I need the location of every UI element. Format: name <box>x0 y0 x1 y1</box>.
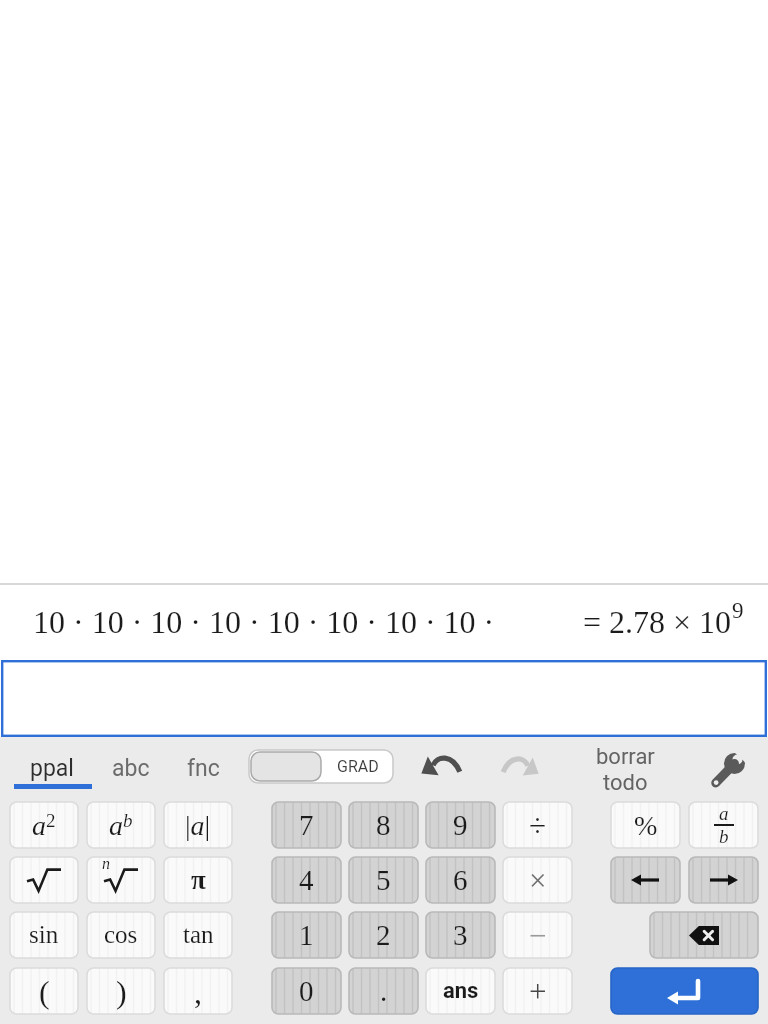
staticText: ) <box>116 974 127 1009</box>
button[interactable] <box>10 857 78 903</box>
staticText: 1 <box>299 919 314 951</box>
staticText: π <box>191 865 206 895</box>
staticText: tan <box>183 921 214 949</box>
staticText: 10 · 10 · 10 · 10 · 10 · 10 · 10 · 10 · <box>33 604 495 639</box>
button[interactable]: abc <box>96 748 166 788</box>
staticText: abc <box>112 755 150 782</box>
staticText: ÷ <box>529 808 547 842</box>
button[interactable] <box>710 752 746 788</box>
button[interactable]: + <box>503 968 572 1014</box>
staticText: a <box>719 803 729 824</box>
staticText: GRAD <box>337 757 379 776</box>
staticText: |a| <box>185 810 211 841</box>
button[interactable]: 6 <box>426 857 495 903</box>
button[interactable]: × <box>503 857 572 903</box>
button[interactable]: GRAD <box>249 750 393 783</box>
button[interactable]: n <box>87 857 155 903</box>
button[interactable]: ans <box>426 968 495 1014</box>
staticText: × <box>529 863 547 897</box>
staticText: 3 <box>453 919 468 951</box>
button[interactable] <box>1 660 767 737</box>
staticText: 5 <box>376 864 391 896</box>
staticText: cos <box>104 921 138 949</box>
staticText: 2 <box>376 919 391 951</box>
staticText: b <box>719 826 729 847</box>
staticText: n <box>102 855 110 873</box>
staticText: 7 <box>299 809 314 841</box>
button[interactable]: ( <box>10 968 78 1014</box>
button[interactable]: 0 <box>272 968 341 1014</box>
button[interactable]: 2 <box>349 912 418 958</box>
staticText: ans <box>443 978 479 1004</box>
staticText: ab <box>109 810 133 841</box>
button[interactable]: |a| <box>164 802 232 848</box>
staticText: % <box>634 810 658 841</box>
button[interactable]: ab <box>87 802 155 848</box>
staticText: borrar <box>596 744 655 770</box>
button[interactable]: ) <box>87 968 155 1014</box>
button[interactable] <box>611 857 680 903</box>
button[interactable]: . <box>349 968 418 1014</box>
button[interactable] <box>611 968 758 1014</box>
button[interactable] <box>502 757 539 778</box>
button[interactable]: 9 <box>426 802 495 848</box>
button[interactable]: 5 <box>349 857 418 903</box>
button[interactable] <box>689 857 758 903</box>
staticText: 8 <box>376 809 391 841</box>
button[interactable]: , <box>164 968 232 1014</box>
staticText: sin <box>29 921 59 949</box>
button[interactable]: % <box>611 802 680 848</box>
button[interactable]: tan <box>164 912 232 958</box>
staticText: todo <box>603 770 648 794</box>
button[interactable]: borrar <box>575 744 675 794</box>
button[interactable]: sin <box>10 912 78 958</box>
staticText: ppal <box>30 755 74 782</box>
button[interactable]: 4 <box>272 857 341 903</box>
button[interactable]: ppal <box>17 748 87 788</box>
button[interactable]: − <box>503 912 572 958</box>
staticText: 4 <box>299 864 314 896</box>
staticText: 9 <box>732 598 744 623</box>
staticText: + <box>529 974 547 1008</box>
staticText: 0 <box>299 975 314 1007</box>
button[interactable]: 1 <box>272 912 341 958</box>
staticText: ( <box>39 974 50 1009</box>
staticText: = 2.78 × 10 <box>583 604 732 639</box>
button[interactable]: π <box>164 857 232 903</box>
staticText: − <box>529 918 547 952</box>
staticText: 9 <box>453 809 468 841</box>
button[interactable]: a2 <box>10 802 78 848</box>
button[interactable]: a <box>689 802 758 848</box>
button[interactable] <box>650 912 758 958</box>
button[interactable]: 7 <box>272 802 341 848</box>
staticText: a2 <box>32 810 56 841</box>
staticText: , <box>194 974 202 1009</box>
button[interactable]: fnc <box>168 748 238 788</box>
button[interactable]: 3 <box>426 912 495 958</box>
button[interactable]: 8 <box>349 802 418 848</box>
button[interactable]: cos <box>87 912 155 958</box>
staticText: . <box>380 975 388 1007</box>
button[interactable]: ÷ <box>503 802 572 848</box>
staticText: 6 <box>453 864 468 896</box>
staticText: fnc <box>187 755 220 782</box>
button[interactable] <box>421 756 461 778</box>
